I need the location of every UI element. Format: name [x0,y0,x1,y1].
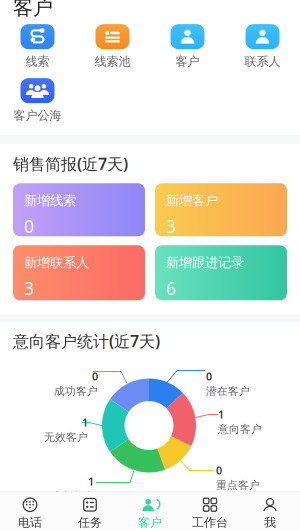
button[interactable]: 新增客户 [155,183,287,236]
button[interactable]: 新增联系人 [13,245,145,300]
staticText: 3 [24,277,34,300]
staticText: 客户 [175,54,199,69]
staticText: 联系人 [244,54,280,69]
staticText: 新增跟进记录 [166,254,244,271]
staticText: 1 [82,415,88,430]
staticText: 无效客户 [44,431,88,444]
staticText: 工作台 [192,515,228,530]
staticText: 线索池 [94,54,130,69]
staticText: 我 [264,515,276,530]
button[interactable]: 新增线索 [13,183,145,236]
button[interactable]: 线索 [0,23,75,70]
staticText: 客户 [138,515,162,530]
staticText: 0 [24,215,34,238]
button[interactable]: 我 [240,492,300,530]
staticText: 1 [88,474,94,489]
staticText: 电话 [18,515,42,530]
button[interactable]: 联系人 [225,23,300,70]
staticText: 任务 [78,515,102,530]
staticText: 成交客户 [50,490,94,503]
staticText: 潜在客户 [206,385,250,398]
button[interactable]: 电话 [0,492,60,530]
staticText: 0 [92,369,98,384]
staticText: 0 [206,369,212,384]
button[interactable]: 客户公海 [0,77,75,124]
staticText: 新增线索 [24,192,76,209]
staticText: 3 [166,215,176,238]
staticText: 重点客户 [216,479,260,492]
button[interactable]: 客户 [150,23,225,70]
staticText: 0 [216,463,222,478]
button[interactable]: 客户 [120,492,180,530]
staticText: 客户 [13,0,53,20]
button[interactable]: 线索池 [75,23,150,70]
staticText: 新增客户 [166,192,218,209]
staticText: 成功客户 [54,385,98,398]
button[interactable]: 任务 [60,492,120,530]
staticText: 线索 [25,54,49,69]
staticText: 客户公海 [13,108,61,123]
staticText: 6 [166,277,176,300]
staticText: 销售简报(近7天) [13,153,128,174]
staticText: 意向客户 [218,423,262,436]
staticText: 新增联系人 [24,254,89,271]
staticText: 意向客户统计(近7天) [13,330,160,351]
staticText: 1 [218,407,224,422]
button[interactable]: 新增跟进记录 [155,245,287,300]
button[interactable]: 工作台 [180,492,240,530]
